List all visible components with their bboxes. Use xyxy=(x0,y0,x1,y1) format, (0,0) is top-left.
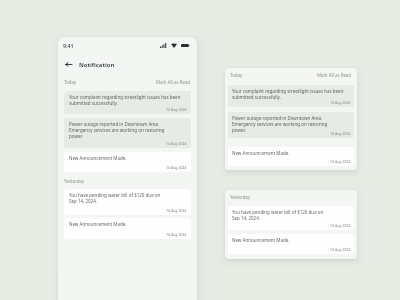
staticText: You have pending water bill of $120 due … xyxy=(232,209,324,221)
button[interactable]: You have pending water bill of $120 due … xyxy=(64,189,191,215)
button[interactable]: Power outage reported in Downtown Area. … xyxy=(64,118,191,148)
staticText: 14 Aug 2024 xyxy=(166,232,187,237)
staticText: Today xyxy=(64,79,77,85)
staticText: Yesterday xyxy=(64,178,85,184)
staticText: 14 Aug 2024 xyxy=(330,100,351,105)
staticText: 14 Aug 2024 xyxy=(166,165,187,170)
staticText: Your complaint regarding streetlight iss… xyxy=(69,94,181,106)
button[interactable]: Your complaint regarding streetlight iss… xyxy=(228,85,354,107)
button[interactable]: Power outage reported in Downtown Area. … xyxy=(228,112,354,138)
staticText: You have pending water bill of $120 due … xyxy=(69,192,161,204)
staticText: 14 Aug 2024 xyxy=(330,247,351,252)
staticText: Mark All as Read xyxy=(317,72,352,78)
staticText: Your complaint regarding streetlight iss… xyxy=(232,88,344,100)
button[interactable]: Mark All as Read xyxy=(156,79,191,85)
staticText: New Announcement Made. xyxy=(69,221,127,227)
button[interactable]: New Announcement Made. xyxy=(64,152,191,172)
button[interactable]: Your complaint regarding streetlight iss… xyxy=(64,91,191,114)
staticText: 14 Aug 2024 xyxy=(330,223,351,228)
button[interactable]: New Announcement Made. xyxy=(228,234,354,254)
staticText: 14 Aug 2024 xyxy=(166,208,187,213)
staticText: Notification xyxy=(79,61,115,69)
staticText: New Announcement Made. xyxy=(69,155,127,161)
staticText: New Announcement Made. xyxy=(232,150,290,156)
staticText: Power outage reported in Downtown Area. … xyxy=(232,115,328,133)
staticText: 14 Aug 2024 xyxy=(330,131,351,136)
staticText: Yesterday xyxy=(230,194,251,200)
button[interactable]: You have pending water bill of $120 due … xyxy=(228,206,354,230)
staticText: 14 Aug 2024 xyxy=(166,141,187,146)
staticText: 14 Aug 2024 xyxy=(330,159,351,164)
button[interactable]: Mark All as Read xyxy=(317,72,352,78)
staticText: Today xyxy=(230,72,243,78)
staticText: New Announcement Made. xyxy=(232,237,290,243)
staticText: 9:41 xyxy=(63,42,74,49)
button[interactable]: New Announcement Made. xyxy=(64,218,191,239)
staticText: 14 Aug 2024 xyxy=(166,107,187,112)
button[interactable]: Back xyxy=(63,59,74,70)
staticText: Power outage reported in Downtown Area. … xyxy=(69,121,165,139)
button[interactable]: New Announcement Made. xyxy=(228,147,354,166)
staticText: Mark All as Read xyxy=(156,79,191,85)
